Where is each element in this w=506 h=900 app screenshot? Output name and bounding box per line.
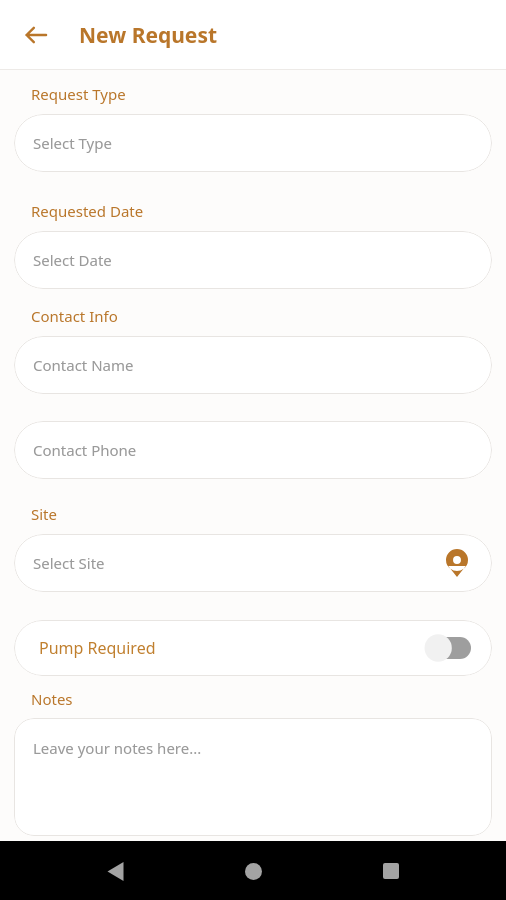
button[interactable]: Contact Name	[14, 336, 492, 394]
button[interactable]: Home	[230, 848, 276, 894]
staticText: Select Type	[33, 133, 112, 153]
staticText: Request Type	[31, 84, 126, 104]
button[interactable]: Pump required toggle	[424, 633, 474, 663]
button[interactable]: Select Type	[14, 114, 492, 172]
staticText: Contact Info	[31, 306, 118, 326]
staticText: Notes	[31, 689, 73, 709]
button[interactable]: Pick site on map	[442, 548, 472, 578]
staticText: Site	[31, 504, 57, 524]
button[interactable]: Recent apps	[368, 848, 414, 894]
staticText: Select Site	[33, 553, 105, 573]
button[interactable]: Back	[14, 13, 58, 57]
button[interactable]: Select Site	[14, 534, 492, 592]
button[interactable]: Leave your notes here...	[14, 718, 492, 836]
button[interactable]: Select Date	[14, 231, 492, 289]
staticText: Pump Required	[39, 637, 156, 659]
staticText: Leave your notes here...	[33, 738, 202, 758]
staticText: Contact Name	[33, 355, 134, 375]
button[interactable]: Pump Required	[14, 620, 492, 676]
staticText: Requested Date	[31, 201, 144, 221]
staticText: New Request	[79, 21, 218, 50]
button[interactable]: Contact Phone	[14, 421, 492, 479]
button[interactable]: Back	[92, 848, 138, 894]
staticText: Select Date	[33, 250, 112, 270]
staticText: Contact Phone	[33, 440, 137, 460]
